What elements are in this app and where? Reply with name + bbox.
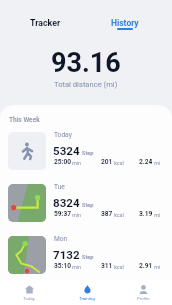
staticText: 25:00 <box>54 158 71 166</box>
staticText: kcal <box>113 160 124 166</box>
button[interactable]: Today <box>0 280 58 305</box>
staticText: Step <box>82 150 94 157</box>
staticText: 387 <box>101 210 113 218</box>
button[interactable]: History <box>96 8 153 36</box>
staticText: min <box>71 160 81 166</box>
staticText: min <box>71 212 81 218</box>
staticText: 35:10 <box>54 262 71 270</box>
button[interactable]: Tue <box>0 177 172 229</box>
staticText: kcal <box>113 212 124 218</box>
staticText: Tue <box>54 183 65 191</box>
staticText: Today <box>54 131 72 139</box>
staticText: 8324 <box>53 196 80 210</box>
staticText: mi <box>153 212 161 218</box>
button[interactable]: Training <box>58 280 115 305</box>
staticText: 201 <box>101 158 113 166</box>
staticText: Today <box>23 296 35 301</box>
button[interactable]: Tracker <box>15 8 76 32</box>
staticText: mi <box>153 264 161 270</box>
staticText: mi <box>153 160 161 166</box>
staticText: kcal <box>113 264 124 270</box>
staticText: Step <box>82 254 94 261</box>
button[interactable]: Today <box>0 125 172 177</box>
staticText: Profile <box>137 296 150 301</box>
staticText: 311 <box>101 262 113 270</box>
staticText: 2.91 <box>139 262 153 270</box>
staticText: 2.24 <box>139 158 153 166</box>
staticText: 93.16 <box>51 47 121 79</box>
staticText: Step <box>82 202 94 209</box>
staticText: 7132 <box>53 248 80 262</box>
staticText: Mon <box>54 235 68 243</box>
staticText: 5324 <box>53 144 80 158</box>
staticText: Tracker <box>30 18 61 28</box>
staticText: 59:37 <box>54 210 71 218</box>
staticText: min <box>71 264 81 270</box>
button[interactable]: Mon <box>0 229 172 281</box>
staticText: Total distance (mi) <box>54 80 118 89</box>
button[interactable]: Profile <box>115 280 172 305</box>
staticText: 3.19 <box>139 210 153 218</box>
staticText: Training <box>79 296 95 301</box>
staticText: History <box>111 18 139 28</box>
staticText: This Week <box>9 116 40 124</box>
